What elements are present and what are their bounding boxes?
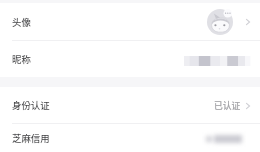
staticText: 头像 xyxy=(12,15,31,29)
staticText: 昵称 xyxy=(12,52,31,66)
button[interactable]: 头像 xyxy=(0,3,260,40)
button[interactable]: 昵称 xyxy=(0,41,260,77)
staticText: 身份认证 xyxy=(12,98,50,112)
button[interactable]: 身份认证 xyxy=(0,87,260,123)
button[interactable]: 芝麻信用 xyxy=(0,124,260,152)
staticText: 已认证 xyxy=(214,99,241,112)
staticText: 芝麻信用 xyxy=(12,131,50,145)
